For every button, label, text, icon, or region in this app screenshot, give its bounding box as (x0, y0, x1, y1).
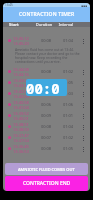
staticText: 13:37:54 (13, 138, 29, 143)
staticText: 01:01 (57, 113, 79, 118)
staticText: 01:05 (57, 146, 79, 151)
staticText: 01:03 (57, 91, 79, 96)
staticText: 13:42:09 (13, 94, 29, 99)
staticText: 01:02 (57, 135, 79, 140)
staticText: AMNIOTIC FLUID COMES OUT (18, 167, 75, 172)
staticText: 13:39:52 (13, 111, 29, 116)
staticText: 01:02 (57, 69, 79, 74)
button[interactable]: 13:36:45 (3, 143, 90, 154)
staticText: 01:04 (57, 38, 79, 43)
staticText: 13:40:58 (13, 100, 29, 105)
staticText: 13:38:51 (13, 122, 29, 127)
staticText: ▪▪▪ (81, 4, 88, 7)
button[interactable]: 13:45:12 (3, 35, 90, 46)
staticText: 13:41:04 (13, 105, 29, 110)
staticText: CONTRACTION END (23, 180, 71, 187)
button[interactable]: 13:42:01 (3, 88, 90, 99)
button[interactable]: CONTRACTION END (5, 176, 88, 191)
button[interactable]: More options (80, 38, 86, 44)
staticText: 13:44:16 (13, 72, 29, 77)
staticText: 00:07 (35, 135, 57, 140)
button[interactable]: 00:05 (26, 79, 67, 96)
staticText: 13:45:12 (13, 36, 29, 41)
button[interactable]: 13:44:08 (3, 66, 90, 77)
staticText: 00:08 (35, 69, 57, 74)
button[interactable]: 13:40:58 (3, 99, 90, 110)
staticText: 00:08 (35, 124, 57, 129)
button[interactable]: More options (80, 69, 86, 75)
staticText: 13:43:13 (13, 83, 29, 88)
staticText: Start (9, 22, 33, 27)
staticText: 13:44:08 (13, 67, 29, 72)
staticText: 13:36:45 (13, 144, 29, 149)
staticText: 13:42:01 (13, 89, 29, 94)
staticText: 00:07 (35, 80, 57, 85)
button[interactable]: 13:43:06 (3, 77, 90, 88)
staticText: 00:08 (35, 91, 57, 96)
button[interactable]: 13:37:47 (3, 132, 90, 143)
staticText: 01:06 (57, 102, 79, 107)
button[interactable]: 13:38:51 (3, 121, 90, 132)
button[interactable]: AMNIOTIC FLUID COMES OUT (5, 163, 88, 175)
staticText: Interval (55, 22, 77, 27)
staticText: 01:04 (57, 124, 79, 129)
button[interactable]: More options (80, 124, 86, 130)
staticText: 01:05 (57, 80, 79, 85)
staticText: 13:37:47 (13, 133, 29, 138)
staticText: 13:40:01 (13, 116, 29, 121)
staticText: 13:43:06 (13, 78, 29, 83)
button[interactable]: More options (80, 135, 86, 141)
staticText: 13:45:20 (13, 41, 29, 46)
button[interactable]: More options (80, 113, 86, 119)
staticText: 13:45 (5, 3, 13, 7)
staticText: Duration (33, 22, 55, 27)
staticText: 00:08 (35, 38, 57, 43)
staticText: 00:08 (35, 146, 57, 151)
button[interactable]: CONTRACTION TIMER (3, 7, 90, 22)
staticText: 13:36:53 (13, 149, 29, 154)
button[interactable]: More options (80, 91, 86, 97)
button[interactable]: 13:39:52 (3, 110, 90, 121)
staticText: 00:06 (35, 102, 57, 107)
staticText: CONTRACTION TIMER (19, 11, 75, 18)
staticText: 00:05 (26, 79, 67, 96)
button[interactable]: More options (80, 102, 86, 108)
button[interactable]: More options (80, 80, 86, 86)
staticText: Amniotic fluid has come out at 13:44. Pl… (15, 47, 80, 64)
staticText: 13:38:59 (13, 127, 29, 132)
staticText: 00:09 (35, 113, 57, 118)
button[interactable]: More options (80, 146, 86, 152)
